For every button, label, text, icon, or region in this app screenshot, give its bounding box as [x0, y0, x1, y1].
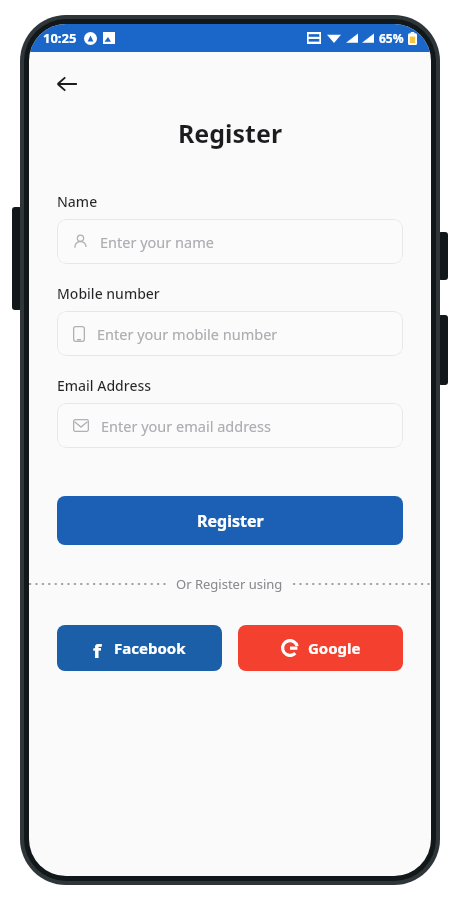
staticText: Name	[57, 192, 98, 211]
staticText: Facebook	[114, 638, 186, 658]
staticText: Or Register using	[176, 575, 283, 593]
button[interactable]: Register	[57, 496, 403, 545]
staticText: Register	[197, 510, 264, 532]
staticText: Email Address	[57, 376, 152, 395]
button[interactable]: Enter your name	[57, 219, 403, 264]
staticText: Mobile number	[57, 284, 160, 303]
staticText: f	[93, 638, 102, 658]
button[interactable]: Enter your email address	[57, 403, 403, 448]
staticText: Google	[308, 638, 361, 658]
staticText: Enter your email address	[101, 416, 271, 436]
staticText: 65%	[379, 30, 404, 46]
button[interactable]: f	[57, 625, 222, 671]
button[interactable]: Back	[47, 64, 87, 104]
button[interactable]: Google	[238, 625, 403, 671]
staticText: 10:25	[43, 29, 77, 47]
staticText: Enter your name	[100, 232, 214, 252]
staticText: Register	[29, 116, 431, 150]
button[interactable]: Enter your mobile number	[57, 311, 403, 356]
staticText: Enter your mobile number	[97, 324, 278, 344]
